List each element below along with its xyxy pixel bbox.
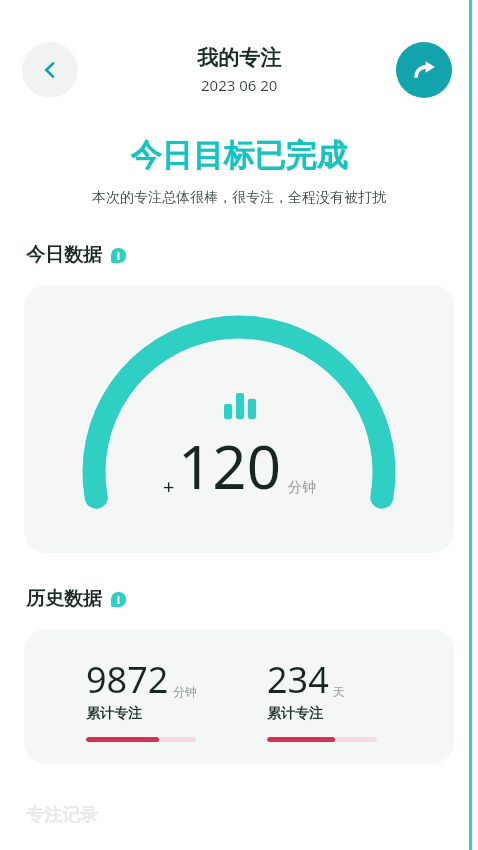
staticText: 120	[178, 425, 281, 507]
button[interactable]: Share	[396, 42, 452, 98]
staticText: i	[117, 593, 120, 607]
button[interactable]: +	[24, 285, 454, 553]
staticText: 今日数据	[26, 243, 102, 267]
button[interactable]: Back	[22, 42, 78, 98]
staticText: 累计专注	[86, 705, 142, 723]
staticText: 历史数据	[26, 587, 102, 611]
button[interactable]: 历史数据	[26, 587, 126, 611]
staticText: 9872	[86, 655, 169, 704]
staticText: 分钟	[173, 684, 197, 699]
staticText: 天	[333, 684, 345, 699]
staticText: 2023 06 20	[201, 75, 278, 95]
staticText: 累计专注	[267, 705, 323, 723]
staticText: 分钟	[288, 479, 316, 497]
button[interactable]: 9872	[24, 629, 454, 764]
staticText: 234	[267, 655, 329, 704]
staticText: 今日目标已完成	[0, 136, 478, 175]
button[interactable]: 今日数据	[26, 243, 126, 267]
button[interactable]: 专注记录	[26, 804, 98, 827]
staticText: 本次的专注总体很棒，很专注，全程没有被打扰	[0, 189, 478, 207]
staticText: 专注记录	[26, 804, 98, 827]
staticText: i	[117, 249, 120, 263]
staticText: +	[163, 473, 175, 500]
staticText: 我的专注	[197, 45, 281, 71]
